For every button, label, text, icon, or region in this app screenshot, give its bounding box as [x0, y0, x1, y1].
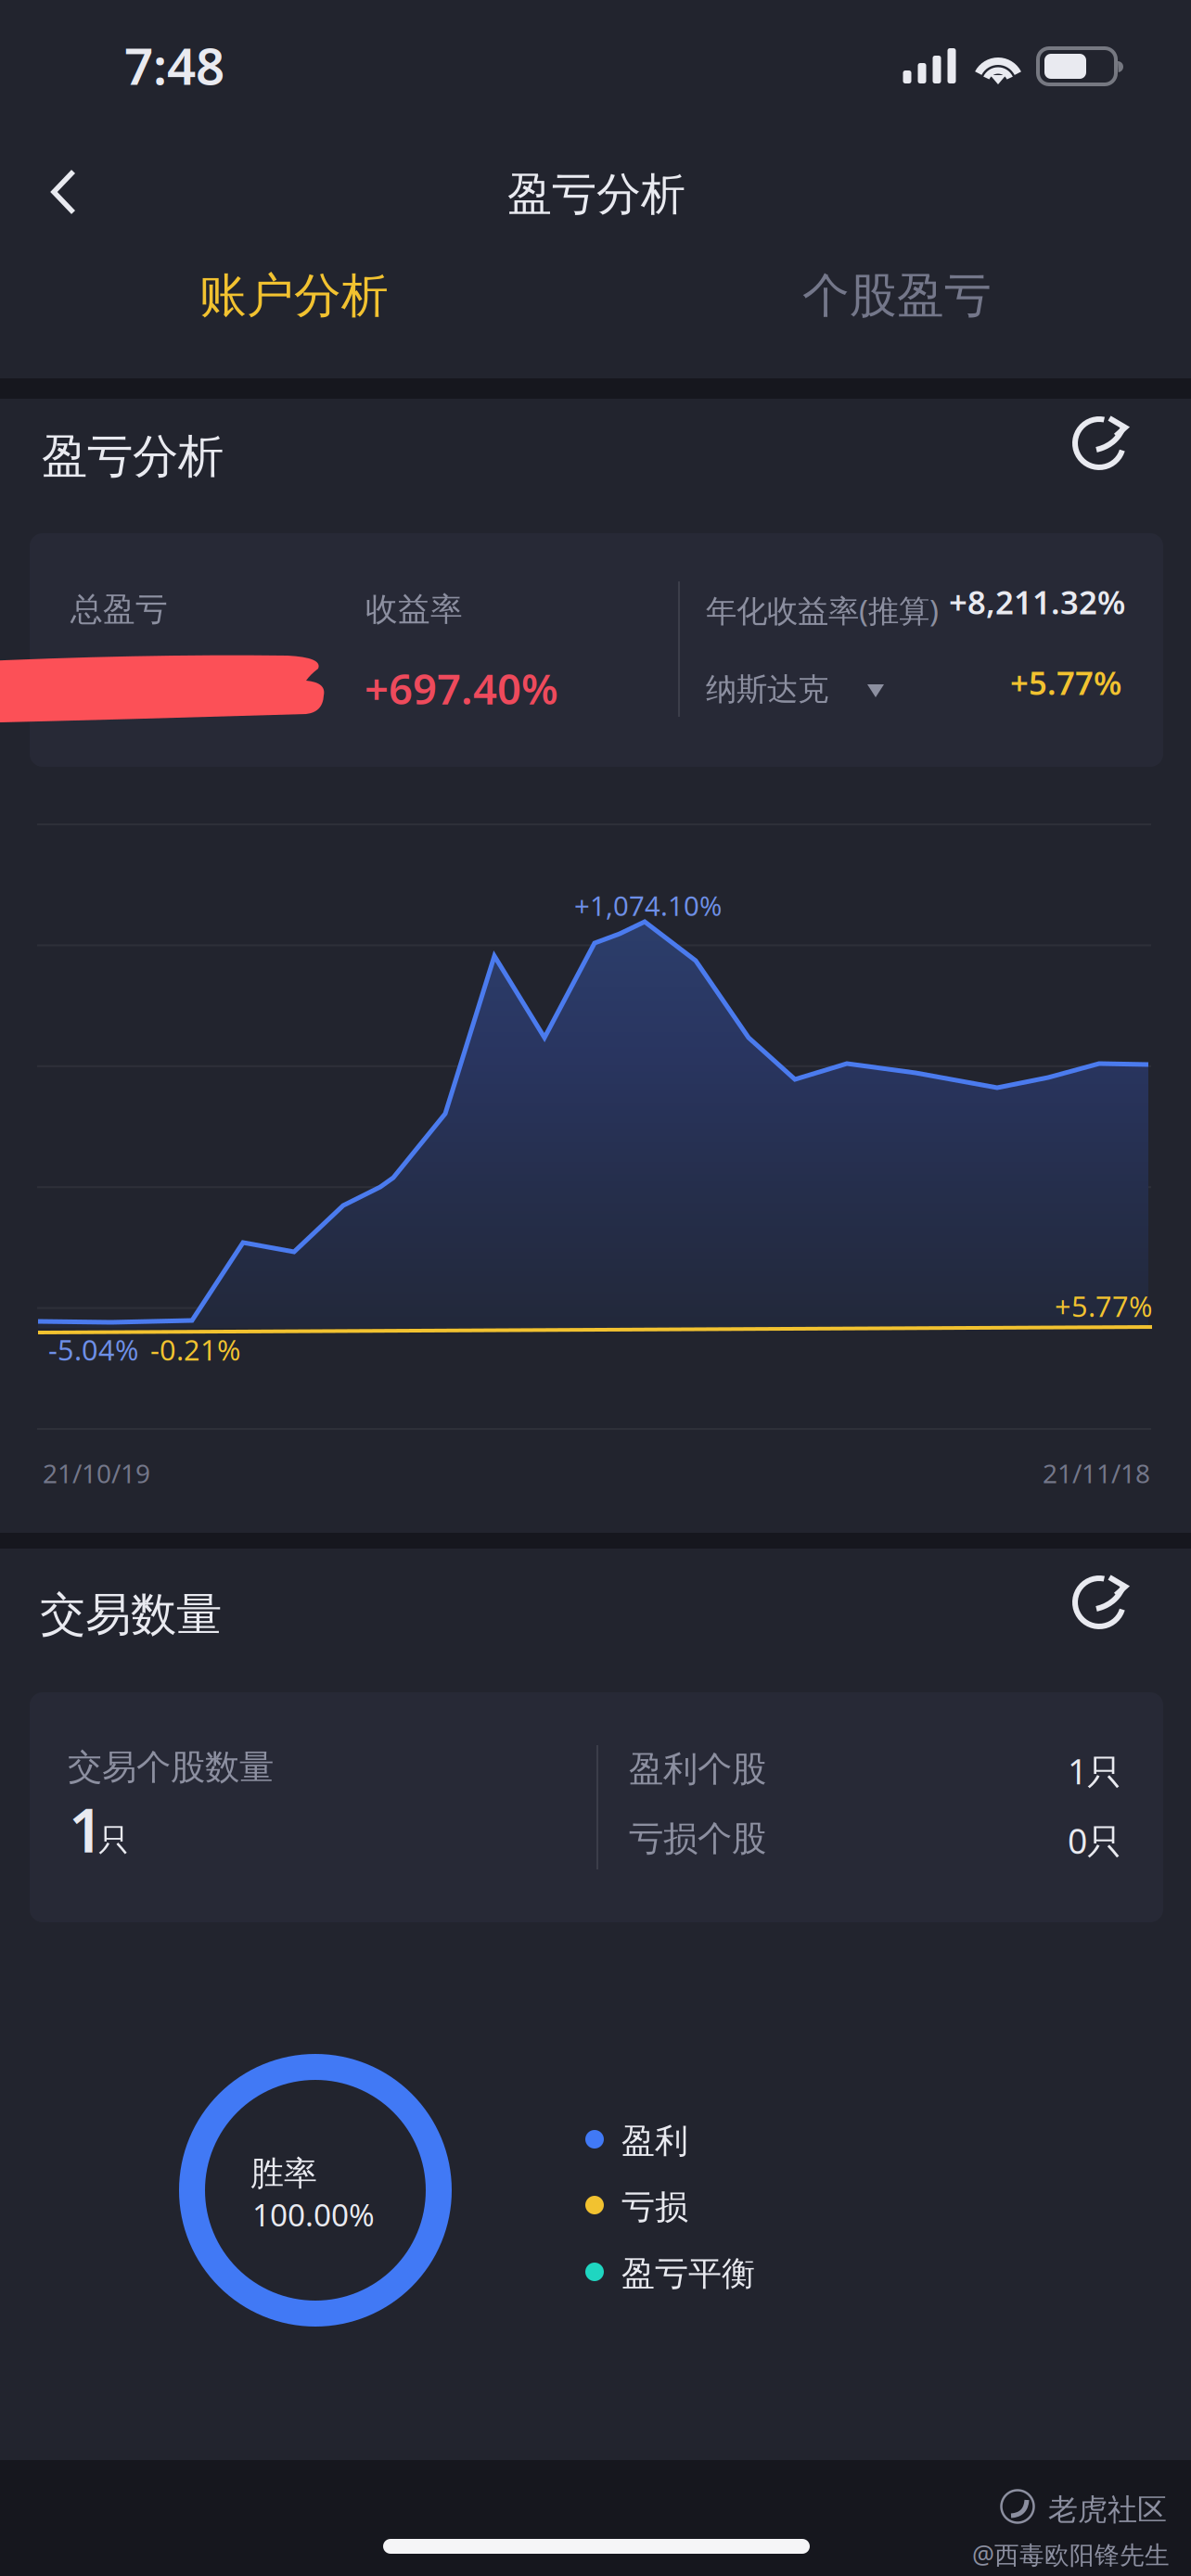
staticText: 年化收益率(推算) — [706, 590, 939, 631]
staticText: 7:48 — [124, 32, 224, 99]
staticText: 盈亏分析 — [42, 428, 224, 485]
staticText: 盈利 — [621, 2121, 688, 2162]
staticText: +697.40% — [365, 660, 558, 716]
staticText: +1,074.10% — [574, 887, 722, 924]
staticText: +5.77% — [1010, 661, 1121, 704]
staticText: 交易个股数量 — [68, 1746, 274, 1789]
button[interactable]: Refresh profit and loss analysis — [1057, 399, 1146, 488]
button[interactable]: Refresh trade count — [1057, 1558, 1146, 1647]
staticText: +8,211.32% — [949, 580, 1125, 623]
staticText: 只 — [98, 1821, 129, 1859]
staticText: +5.77% — [1055, 1287, 1152, 1325]
staticText: 个股盈亏 — [802, 267, 992, 325]
button[interactable]: 个股盈亏 — [744, 245, 1050, 347]
staticText: 盈利个股 — [629, 1748, 766, 1790]
staticText: 0只 — [1068, 1817, 1121, 1863]
staticText: 账户分析 — [199, 267, 389, 325]
staticText: 总盈亏 — [70, 590, 168, 629]
button[interactable]: 账户分析 — [141, 245, 447, 347]
staticText: 胜率 — [250, 2153, 317, 2194]
staticText: -5.04% — [48, 1331, 138, 1368]
staticText: 盈亏分析 — [507, 167, 685, 222]
staticText: 1 — [69, 1789, 103, 1869]
button[interactable]: Back — [19, 144, 111, 231]
staticText: 老虎社区 — [1048, 2492, 1167, 2528]
staticText: 交易数量 — [40, 1587, 222, 1643]
staticText: 亏损 — [621, 2187, 688, 2228]
staticText: 盈亏平衡 — [621, 2253, 755, 2294]
staticText: 1只 — [1068, 1748, 1121, 1794]
staticText: 纳斯达克 — [706, 670, 828, 708]
staticText: 亏损个股 — [629, 1817, 766, 1860]
staticText: 收益率 — [365, 590, 463, 629]
staticText: 21/11/18 — [1043, 1456, 1150, 1490]
staticText: 100.00% — [252, 2194, 375, 2235]
staticText: 21/10/19 — [43, 1456, 150, 1490]
staticText: -0.21% — [150, 1331, 240, 1368]
staticText: @西毒欧阳锋先生 — [972, 2538, 1170, 2571]
